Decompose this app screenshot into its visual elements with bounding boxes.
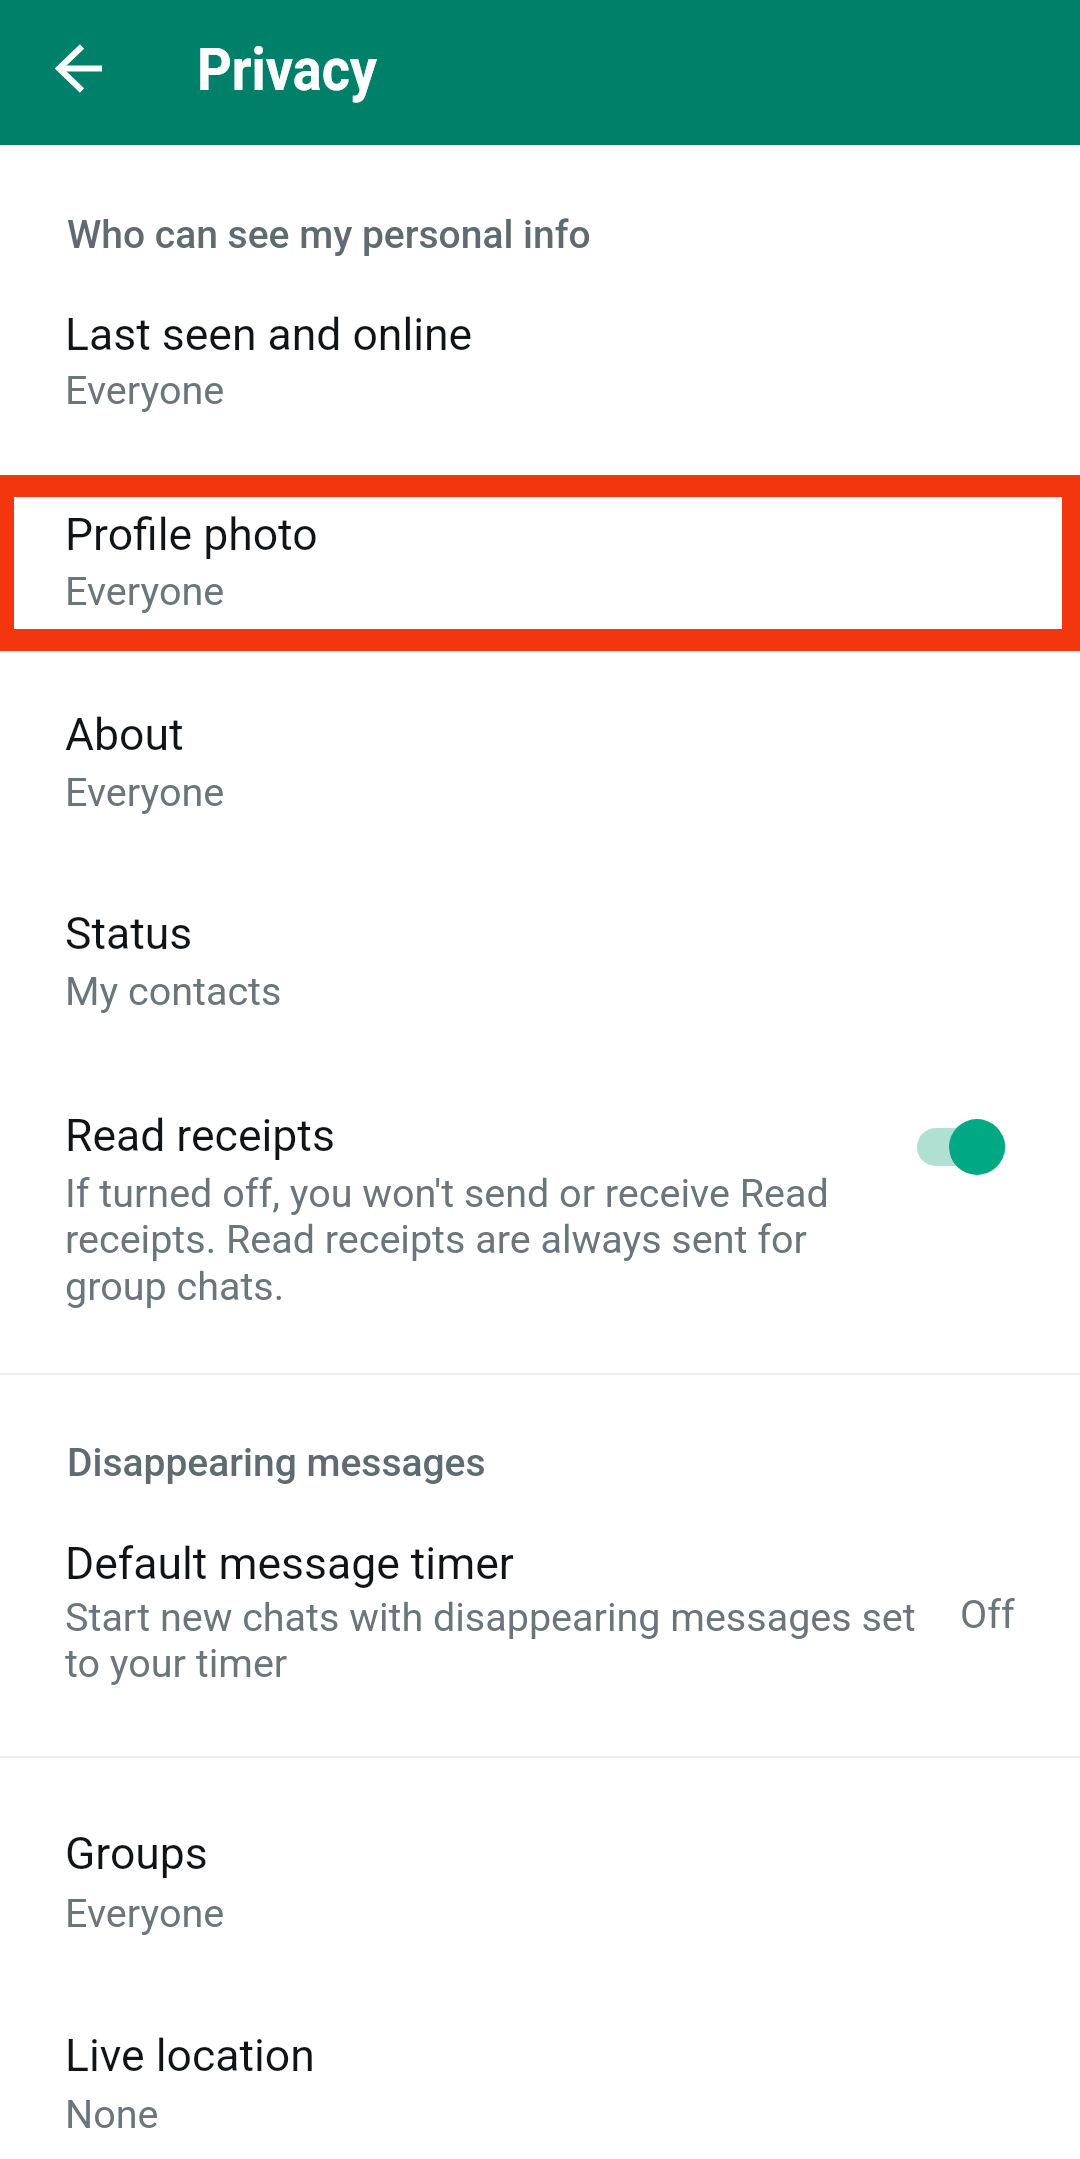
button[interactable]: Read receipts on — [906, 1110, 1018, 1184]
staticText: Disappearing messages — [67, 1440, 486, 1486]
staticText: Off — [960, 1591, 1015, 1637]
button[interactable]: Status — [0, 877, 1080, 1075]
staticText: Everyone — [65, 1890, 225, 1936]
staticText: If turned off, you won't send or receive… — [65, 1170, 829, 1310]
staticText: Live location — [65, 2030, 315, 2082]
button[interactable]: Profile photo — [0, 477, 1080, 677]
button[interactable]: Last seen and online — [0, 278, 1080, 478]
staticText: Default message timer — [65, 1538, 514, 1590]
staticText: My contacts — [65, 968, 282, 1014]
button[interactable]: Default message timer — [0, 1505, 1080, 1759]
staticText: Profile photo — [65, 509, 318, 561]
staticText: Last seen and online — [65, 309, 473, 361]
button[interactable]: Groups — [0, 1795, 1080, 1995]
staticText: About — [65, 709, 184, 761]
button[interactable]: Live location — [0, 1995, 1080, 2159]
staticText: None — [65, 2091, 159, 2137]
staticText: Groups — [65, 1828, 208, 1880]
button[interactable]: About — [0, 677, 1080, 877]
button[interactable]: Navigate up — [22, 26, 116, 120]
staticText: Start new chats with disappearing messag… — [65, 1594, 916, 1687]
button[interactable]: Read receipts — [0, 1075, 1080, 1369]
staticText: Everyone — [65, 367, 225, 413]
staticText: Everyone — [65, 769, 225, 815]
staticText: Who can see my personal info — [67, 212, 591, 258]
staticText: Read receipts — [65, 1110, 335, 1162]
staticText: Everyone — [65, 568, 225, 614]
staticText: Status — [65, 908, 193, 960]
staticText: Privacy — [197, 34, 378, 104]
